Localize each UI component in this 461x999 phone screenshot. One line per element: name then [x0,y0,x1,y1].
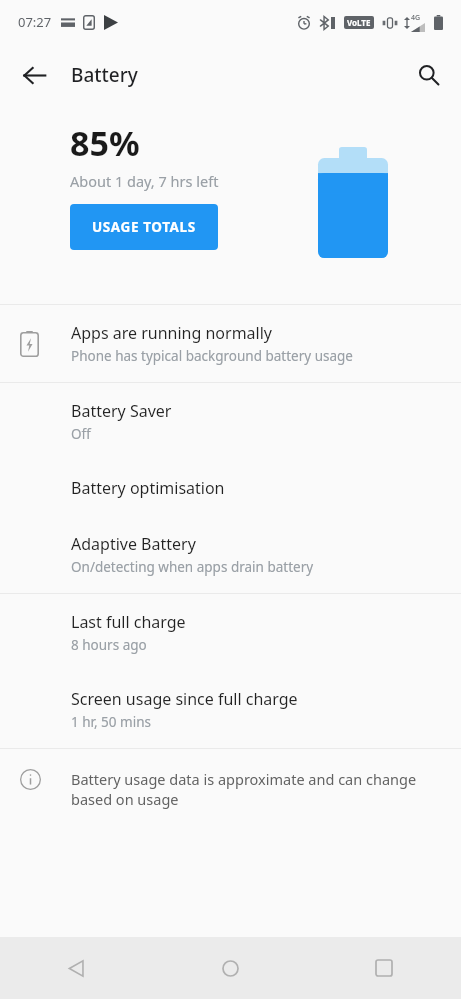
staticText: 8 hours ago [71,636,147,654]
button[interactable]: Back [10,51,58,99]
staticText: VoLTE [347,17,371,28]
staticText: Off [71,425,91,443]
button[interactable]: Apps are running normally [0,305,461,382]
button[interactable]: Recent apps [307,937,461,999]
staticText: Apps are running normally [71,322,272,344]
button[interactable]: Battery Saver [0,383,461,460]
staticText: Battery usage data is approximate and ca… [71,769,437,809]
staticText: Phone has typical background battery usa… [71,347,353,365]
button[interactable]: Search [405,51,453,99]
staticText: Battery [71,62,138,88]
button[interactable]: USAGE TOTALS [70,204,218,250]
staticText: 4G [411,13,421,23]
button[interactable]: Home [153,937,307,999]
button[interactable]: Adaptive Battery [0,516,461,593]
staticText: On/detecting when apps drain battery [71,558,314,576]
staticText: USAGE TOTALS [92,218,196,236]
staticText: Battery optimisation [71,477,225,499]
button[interactable]: Screen usage since full charge [0,671,461,748]
button[interactable]: Last full charge [0,594,461,671]
button[interactable]: Battery optimisation [0,460,461,516]
staticText: Screen usage since full charge [71,688,298,710]
staticText: About 1 day, 7 hrs left [70,171,219,191]
staticText: 85% [70,120,140,166]
staticText: 1 hr, 50 mins [71,713,151,731]
staticText: Last full charge [71,611,186,633]
staticText: Battery Saver [71,400,172,422]
button[interactable]: Back [0,937,153,999]
staticText: 07:27 [18,13,52,31]
staticText: Adaptive Battery [71,533,196,555]
